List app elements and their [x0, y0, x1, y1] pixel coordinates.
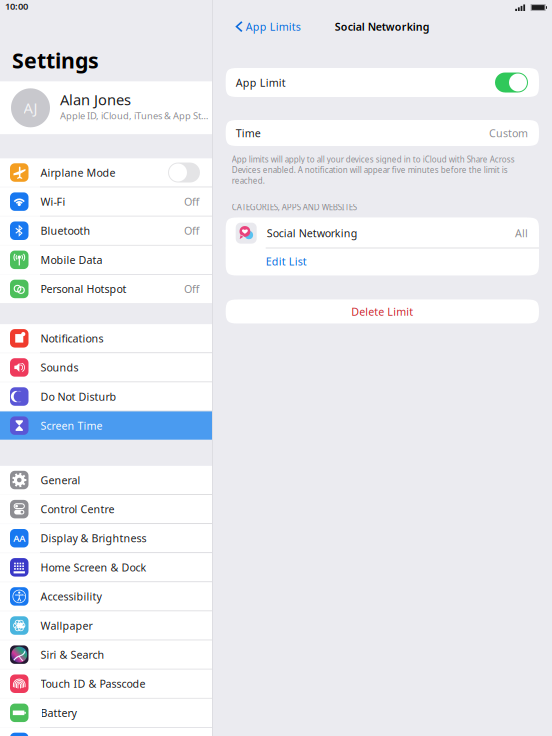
staticText: Off	[184, 224, 199, 238]
button[interactable]: Mobile Data	[0, 246, 212, 274]
staticText: App limits will apply to all your device…	[232, 154, 515, 186]
button[interactable]: Wi-Fi	[0, 187, 212, 216]
staticText: Display & Brightness	[40, 531, 146, 545]
button[interactable]: Screen Time	[0, 411, 212, 440]
staticText: AA	[13, 532, 25, 544]
button[interactable]: Battery	[0, 699, 212, 727]
staticText: Wi-Fi	[40, 194, 65, 209]
button[interactable]: Control Centre	[0, 495, 212, 523]
staticText: 10:00	[5, 0, 28, 12]
staticText: Delete Limit	[351, 304, 413, 319]
button[interactable]: Personal Hotspot	[0, 275, 212, 303]
staticText: Personal Hotspot	[40, 282, 126, 296]
staticText: Control Centre	[40, 502, 114, 516]
staticText: Social Networking	[267, 226, 358, 240]
button[interactable]: Airplane Mode	[0, 158, 212, 187]
staticText: Siri & Search	[40, 647, 104, 662]
staticText: Accessibility	[40, 589, 101, 603]
staticText: Notifications	[40, 331, 103, 345]
staticText: AJ	[23, 98, 37, 118]
staticText: General	[40, 473, 80, 487]
staticText: Settings	[12, 46, 99, 74]
button[interactable]: Wallpaper	[0, 611, 212, 640]
staticText: Airplane Mode	[40, 165, 115, 180]
button[interactable]: Accessibility	[0, 582, 212, 611]
staticText: Screen Time	[40, 418, 102, 433]
staticText: Bluetooth	[40, 224, 90, 238]
button[interactable]: Notifications	[0, 324, 212, 352]
button[interactable]: Bluetooth	[0, 216, 212, 245]
button[interactable]: General	[0, 466, 212, 494]
button[interactable]: Home Screen & Dock	[0, 553, 212, 581]
button[interactable]: Time	[226, 120, 539, 146]
staticText: Sounds	[40, 360, 78, 374]
button[interactable]: Sounds	[0, 353, 212, 382]
staticText: App Limit	[236, 75, 286, 90]
button[interactable]: Siri & Search	[0, 640, 212, 669]
button[interactable]: Social Networking	[226, 219, 539, 248]
staticText: Mobile Data	[40, 253, 102, 267]
staticText: Alan Jones	[60, 90, 131, 109]
staticText: Touch ID & Passcode	[40, 677, 145, 691]
button[interactable]: Delete Limit	[226, 299, 539, 323]
staticText: All	[515, 226, 528, 240]
button[interactable]: AA	[0, 524, 212, 552]
button[interactable]: Do Not Disturb	[0, 382, 212, 411]
staticText: Wallpaper	[40, 618, 92, 633]
staticText: Off	[184, 194, 199, 209]
staticText: Home Screen & Dock	[40, 560, 146, 574]
staticText: CATEGORIES, APPS AND WEBSITES	[232, 202, 357, 212]
staticText: Custom	[489, 126, 528, 140]
button[interactable]: AJ	[0, 81, 212, 134]
staticText: Off	[184, 282, 199, 296]
staticText: Edit List	[266, 254, 307, 268]
staticText: Battery	[40, 706, 76, 720]
button[interactable]: Privacy	[0, 728, 212, 736]
button[interactable]: Touch ID & Passcode	[0, 669, 212, 698]
button[interactable]: App Limits	[226, 15, 307, 37]
staticText: Social Networking	[335, 19, 430, 34]
button[interactable]: Edit List	[226, 248, 539, 274]
staticText: Time	[236, 126, 261, 140]
staticText: App Limits	[246, 19, 301, 34]
staticText: Apple ID, iCloud, iTunes & App St…	[60, 109, 208, 122]
staticText: Do Not Disturb	[40, 389, 116, 404]
